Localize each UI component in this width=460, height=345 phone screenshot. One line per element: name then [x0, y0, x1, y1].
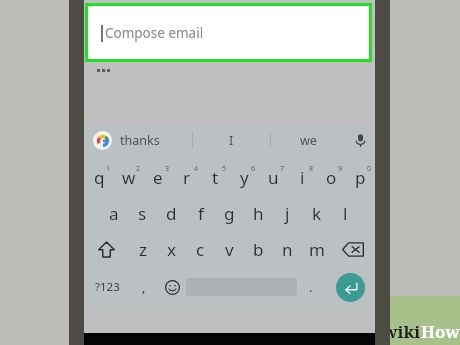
staticText: o — [326, 166, 337, 189]
staticText: x — [167, 238, 176, 261]
button[interactable]: s — [128, 195, 157, 231]
button[interactable]: c — [186, 231, 215, 267]
staticText: y — [240, 166, 249, 189]
staticText: 9 — [338, 164, 343, 174]
staticText: m — [309, 238, 325, 261]
button[interactable]: e — [143, 159, 172, 195]
button[interactable]: . — [297, 267, 325, 307]
button[interactable]: w — [114, 159, 143, 195]
staticText: s — [138, 202, 147, 225]
staticText: ?123 — [95, 279, 120, 295]
button[interactable]: Voice input — [346, 124, 375, 156]
staticText: h — [253, 202, 264, 225]
button[interactable]: z — [128, 231, 157, 267]
button[interactable]: x — [157, 231, 186, 267]
button[interactable]: Compose email — [88, 6, 369, 59]
staticText: we — [300, 132, 317, 149]
staticText: , — [142, 278, 146, 296]
button[interactable]: Enter — [325, 267, 375, 307]
button[interactable]: y — [230, 159, 259, 195]
button[interactable]: o — [317, 159, 346, 195]
button[interactable]: Emoji — [158, 267, 186, 307]
staticText: a — [109, 202, 119, 225]
button[interactable]: h — [244, 195, 273, 231]
button[interactable]: v — [215, 231, 244, 267]
button[interactable]: d — [157, 195, 186, 231]
staticText: w — [122, 166, 136, 189]
button[interactable]: ?123 — [84, 267, 130, 307]
staticText: c — [196, 238, 205, 261]
button[interactable]: p — [346, 159, 375, 195]
staticText: i — [300, 166, 305, 189]
staticText: 2 — [136, 164, 141, 174]
button[interactable]: Backspace — [331, 231, 375, 267]
staticText: How — [421, 320, 460, 342]
staticText: thanks — [120, 132, 160, 149]
staticText: k — [312, 202, 322, 225]
button[interactable]: g — [215, 195, 244, 231]
button[interactable]: , — [130, 267, 158, 307]
staticText: q — [94, 166, 105, 189]
staticText: r — [183, 166, 191, 189]
staticText: b — [253, 238, 264, 261]
button[interactable]: u — [259, 159, 288, 195]
staticText: Compose email — [105, 24, 204, 42]
staticText: d — [166, 202, 177, 225]
staticText: 3 — [165, 164, 170, 174]
button[interactable]: k — [302, 195, 331, 231]
button[interactable]: m — [302, 231, 331, 267]
staticText: 7 — [280, 164, 285, 174]
button[interactable]: Shift — [84, 231, 128, 267]
staticText: 4 — [194, 164, 199, 174]
staticText: j — [285, 202, 290, 225]
staticText: 5 — [222, 164, 227, 174]
button[interactable]: we — [272, 124, 344, 156]
button[interactable]: b — [244, 231, 273, 267]
staticText: p — [355, 166, 366, 189]
staticText: l — [343, 202, 348, 225]
staticText: u — [268, 166, 279, 189]
staticText: t — [212, 166, 219, 189]
staticText: 8 — [309, 164, 314, 174]
staticText: 6 — [251, 164, 256, 174]
button[interactable]: q — [84, 159, 114, 195]
staticText: v — [225, 238, 234, 261]
button[interactable]: thanks — [120, 124, 190, 156]
button[interactable]: a — [99, 195, 128, 231]
staticText: I — [229, 132, 234, 149]
button[interactable]: Google — [93, 131, 112, 150]
button[interactable]: n — [273, 231, 302, 267]
button[interactable]: r — [172, 159, 201, 195]
button[interactable]: i — [288, 159, 317, 195]
button[interactable]: j — [273, 195, 302, 231]
staticText: 0 — [367, 164, 372, 174]
staticText: z — [139, 238, 147, 261]
staticText: f — [198, 202, 204, 225]
staticText: n — [282, 238, 293, 261]
button[interactable]: l — [331, 195, 360, 231]
button[interactable]: f — [186, 195, 215, 231]
staticText: g — [224, 202, 235, 225]
button[interactable]: t — [201, 159, 230, 195]
button[interactable]: I — [194, 124, 268, 156]
staticText: wiki — [383, 320, 421, 342]
staticText: . — [309, 278, 313, 296]
staticText: 1 — [106, 164, 111, 174]
staticText: e — [153, 166, 163, 189]
